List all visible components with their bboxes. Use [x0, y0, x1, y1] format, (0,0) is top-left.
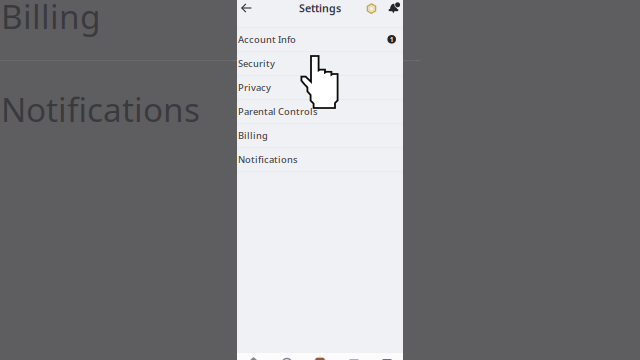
- button[interactable]: Security: [237, 52, 403, 75]
- button[interactable]: Back: [239, 0, 255, 16]
- button[interactable]: Notifications: [386, 0, 402, 16]
- staticText: 1: [390, 35, 394, 44]
- staticText: Settings: [299, 1, 341, 15]
- button[interactable]: Privacy: [237, 76, 403, 99]
- staticText: Notifications: [1, 87, 200, 131]
- staticText: Privacy: [238, 81, 271, 93]
- button[interactable]: Profile: [303, 357, 337, 360]
- button[interactable]: Wallet: [337, 357, 370, 360]
- button[interactable]: Account Info: [237, 28, 403, 51]
- staticText: Security: [238, 57, 275, 69]
- button[interactable]: Parental Controls: [237, 100, 403, 123]
- button[interactable]: More: [370, 357, 403, 360]
- button[interactable]: Home: [237, 357, 270, 360]
- button[interactable]: Notifications: [237, 148, 403, 171]
- staticText: Parental Controls: [238, 105, 318, 117]
- button[interactable]: Rewards: [363, 1, 379, 17]
- staticText: Billing: [238, 129, 268, 141]
- staticText: Billing: [1, 0, 101, 38]
- button[interactable]: Search: [270, 357, 303, 360]
- button[interactable]: Billing: [237, 124, 403, 147]
- staticText: Notifications: [238, 153, 298, 165]
- staticText: Account Info: [238, 33, 296, 45]
